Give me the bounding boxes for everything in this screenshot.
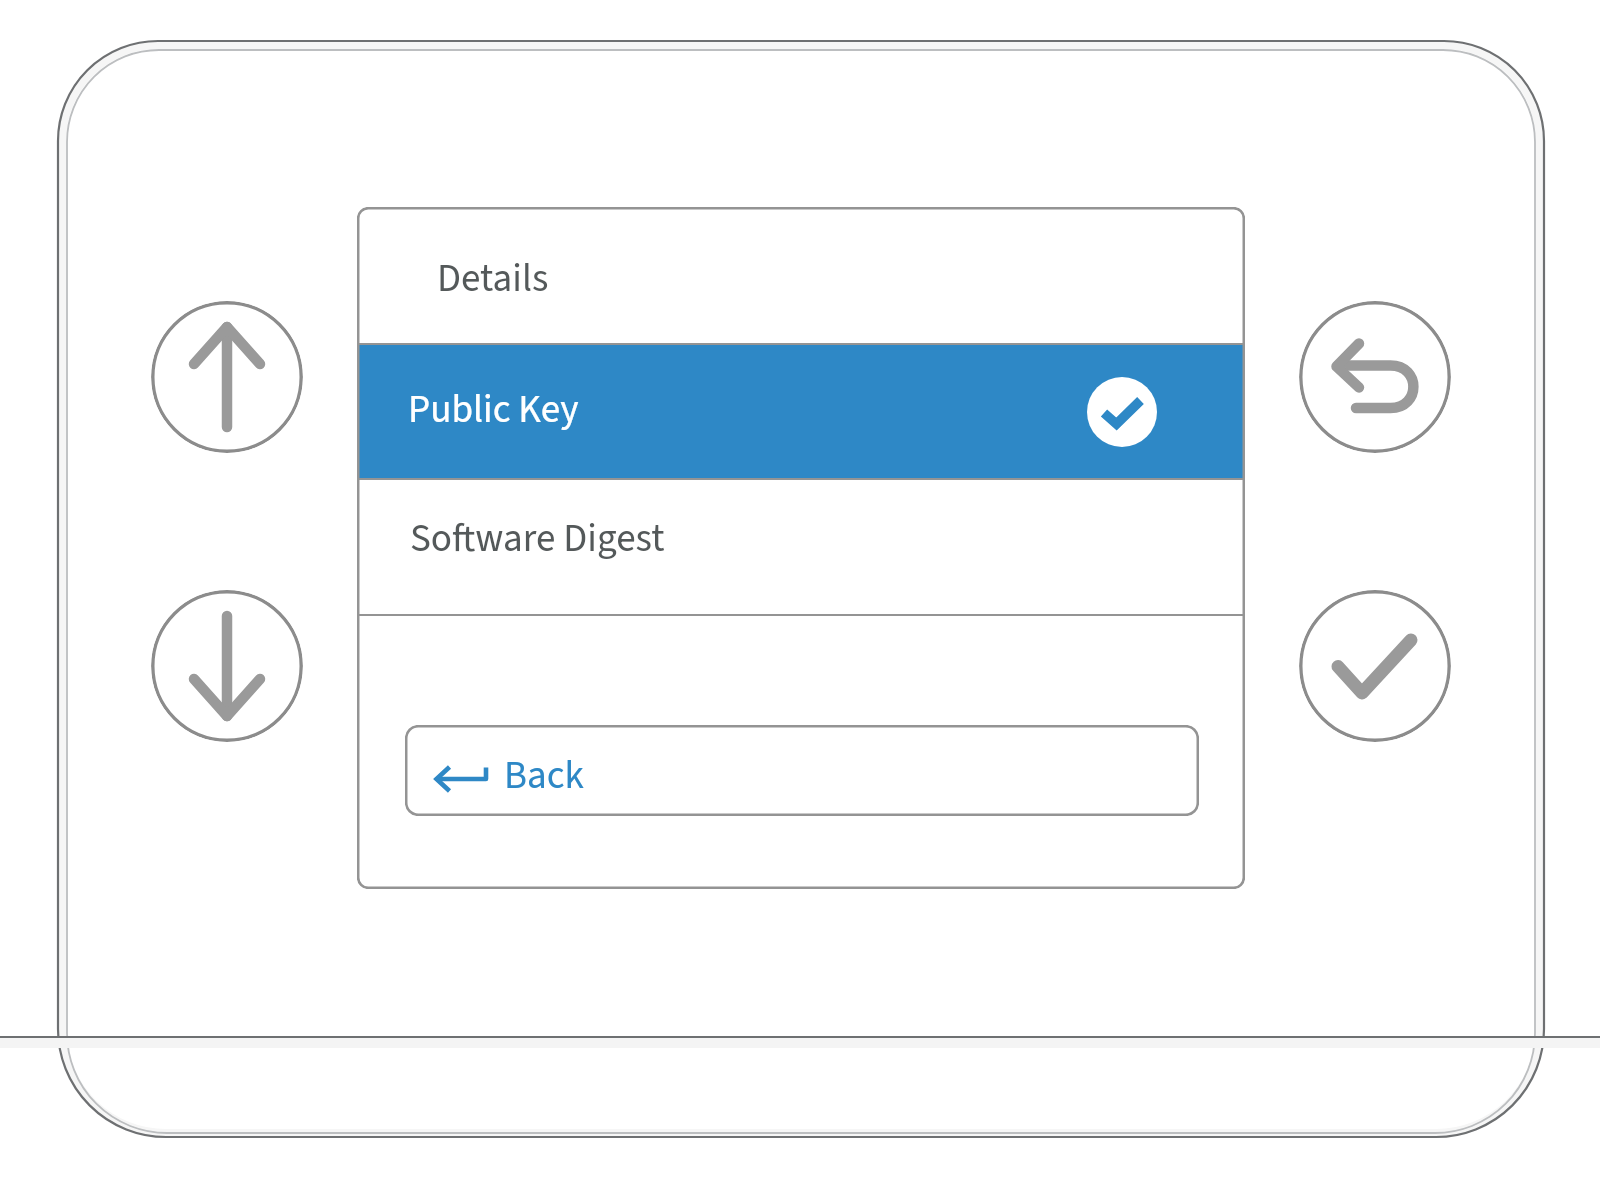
button[interactable]: Confirm — [1299, 590, 1451, 742]
staticText: Public Key — [408, 382, 579, 438]
button[interactable]: Scroll up — [151, 301, 303, 453]
button[interactable]: Scroll down — [151, 590, 303, 742]
button[interactable]: Go back — [1299, 301, 1451, 453]
button[interactable]: Public Key — [357, 343, 1245, 480]
staticText: Software Digest — [410, 511, 665, 567]
staticText: Back — [504, 748, 584, 804]
button[interactable]: Back — [405, 725, 1199, 816]
button[interactable]: Software Digest — [357, 480, 1245, 615]
staticText: Details — [437, 251, 549, 307]
